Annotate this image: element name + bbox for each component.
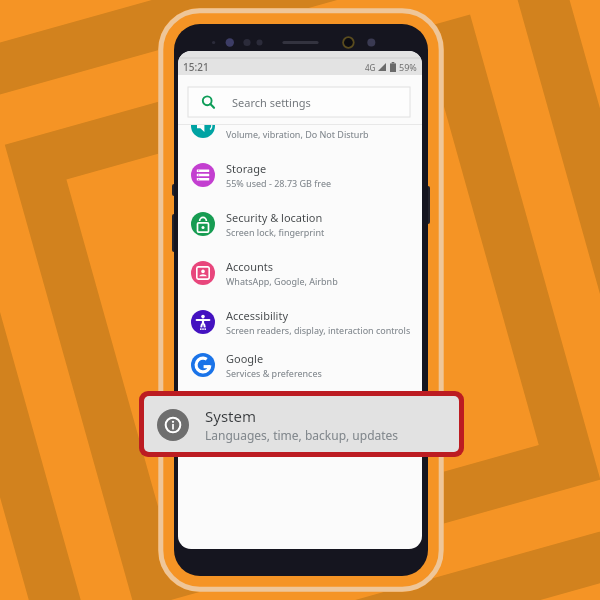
button[interactable]: Accessibility [178,300,422,344]
staticText: WhatsApp, Google, Airbnb [226,275,338,287]
staticText: Google [226,351,264,366]
staticText: Accessibility [226,308,289,323]
staticText: 15:21 [183,60,209,74]
button[interactable]: Sound [178,125,422,148]
staticText: Languages, time, backup, updates [205,427,399,443]
button[interactable]: Search settings [188,87,410,117]
staticText: Screen lock, fingerprint [226,226,325,238]
button[interactable]: Storage [178,153,422,197]
staticText: Services & preferences [226,367,322,379]
button[interactable]: Google [178,343,422,387]
staticText: Storage [226,161,267,176]
staticText: Search settings [232,95,311,110]
staticText: Accounts [226,259,274,274]
staticText: System [205,406,256,426]
staticText: Screen readers, display, interaction con… [226,324,411,336]
button[interactable]: System [144,396,459,452]
staticText: 55% used - 28.73 GB free [226,177,332,189]
staticText: 59% [399,61,417,73]
button[interactable]: Security & location [178,202,422,246]
staticText: 4G [365,62,376,73]
staticText: Security & location [226,210,323,225]
staticText: Volume, vibration, Do Not Disturb [226,128,369,140]
button[interactable]: Accounts [178,251,422,295]
